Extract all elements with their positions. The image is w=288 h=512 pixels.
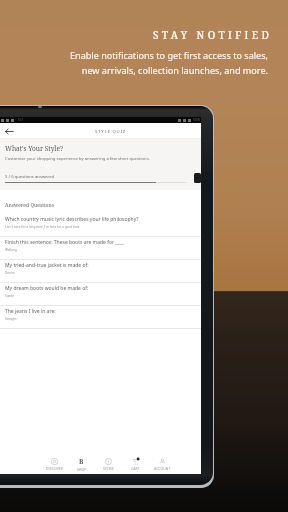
button[interactable]: My tried-and-true jacket is made of: [0,260,201,283]
button[interactable]: Which country music lyric describes your… [0,214,201,237]
staticText: Finish this sentence: These boots are ma… [5,239,125,246]
staticText: B [79,457,84,466]
staticText: Walking [5,248,17,252]
staticText: The jeans I live in are: [5,308,56,315]
staticText: What's Your Style? [5,144,64,153]
staticText: Customize your shopping experience by an… [5,156,150,162]
staticText: STYLE QUIZ [95,128,126,134]
staticText: Denim [5,271,15,275]
staticText: Suede [5,294,15,298]
staticText: 5 / 6 questions answered [5,174,55,180]
staticText: DISCOVER [46,466,63,470]
staticText: 100% [193,118,201,122]
button[interactable]: ACCOUNT [149,454,176,474]
button[interactable]: My dream boots would be made of: [0,283,201,306]
staticText: Which country music lyric describes your… [5,216,139,223]
staticText: Answered Questions [5,202,54,209]
staticText: My tried-and-true jacket is made of: [5,262,89,269]
button[interactable]: Finish this sentence: These boots are ma… [0,237,201,260]
staticText: Straight [5,317,17,321]
staticText: Enable notifications to get first access… [69,49,268,77]
staticText: STORE [103,466,114,470]
button[interactable]: B [68,454,95,474]
staticText: My dream boots would be made of: [5,285,89,292]
staticText: 10:1 [18,118,24,122]
button[interactable]: The jeans I live in are: [0,306,201,329]
staticText: CART [131,466,140,470]
staticText: SHOP [77,467,87,471]
button[interactable]: DISCOVER [41,454,68,474]
button[interactable]: CART [122,454,149,474]
button[interactable]: Back [0,123,18,139]
staticText: I ain't here for a long time, I'm here f… [5,225,80,229]
staticText: STAY NOTIFIED [153,28,273,42]
staticText: ACCOUNT [154,466,171,470]
button[interactable]: STORE [95,454,122,474]
button[interactable]: Options [194,173,201,183]
